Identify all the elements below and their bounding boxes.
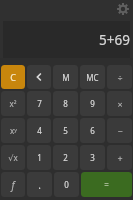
button[interactable]: × bbox=[107, 91, 132, 116]
button[interactable]: = bbox=[81, 172, 132, 197]
staticText: M bbox=[62, 72, 70, 83]
button[interactable]: Settings bbox=[115, 1, 131, 17]
staticText: C bbox=[10, 71, 16, 83]
button[interactable]: f bbox=[1, 172, 25, 197]
button[interactable]: 3 bbox=[80, 145, 105, 170]
button[interactable]: 9 bbox=[80, 91, 105, 116]
button[interactable]: √x bbox=[1, 145, 25, 170]
button[interactable]: 4 bbox=[27, 118, 51, 143]
button[interactable]: M bbox=[53, 65, 78, 89]
button[interactable]: x² bbox=[1, 91, 25, 116]
button[interactable]: ÷ bbox=[107, 65, 132, 89]
staticText: 3 bbox=[90, 152, 95, 163]
staticText: xʸ bbox=[10, 125, 17, 136]
staticText: 5+69 bbox=[99, 31, 130, 49]
button[interactable]: 2 bbox=[53, 145, 78, 170]
button[interactable]: + bbox=[107, 145, 132, 170]
button[interactable]: 8 bbox=[53, 91, 78, 116]
button[interactable]: 0 bbox=[54, 172, 79, 197]
button[interactable]: xʸ bbox=[1, 118, 25, 143]
button[interactable]: 6 bbox=[80, 118, 105, 143]
staticText: √x bbox=[8, 152, 18, 163]
staticText: 9 bbox=[90, 98, 95, 109]
staticText: + bbox=[117, 152, 123, 164]
staticText: f bbox=[11, 178, 15, 192]
button[interactable]: Backspace bbox=[27, 65, 51, 89]
button[interactable]: 7 bbox=[27, 91, 51, 116]
staticText: × bbox=[117, 98, 123, 110]
staticText: = bbox=[104, 179, 109, 190]
staticText: 2 bbox=[63, 152, 68, 163]
button[interactable]: . bbox=[27, 172, 52, 197]
staticText: 8 bbox=[63, 98, 68, 109]
staticText: 5 bbox=[63, 125, 68, 136]
staticText: 4 bbox=[37, 125, 42, 136]
staticText: 0 bbox=[64, 179, 69, 190]
button[interactable]: − bbox=[107, 118, 132, 143]
staticText: x² bbox=[9, 98, 17, 109]
staticText: 6 bbox=[90, 125, 95, 136]
staticText: − bbox=[117, 125, 123, 137]
button[interactable]: MC bbox=[80, 65, 105, 89]
staticText: ÷ bbox=[117, 71, 123, 83]
staticText: 1 bbox=[37, 152, 42, 163]
staticText: 7 bbox=[37, 98, 42, 109]
button[interactable]: 5 bbox=[53, 118, 78, 143]
button[interactable]: C bbox=[1, 65, 25, 89]
staticText: . bbox=[38, 178, 41, 192]
button[interactable]: 1 bbox=[27, 145, 51, 170]
staticText: MC bbox=[86, 72, 99, 83]
